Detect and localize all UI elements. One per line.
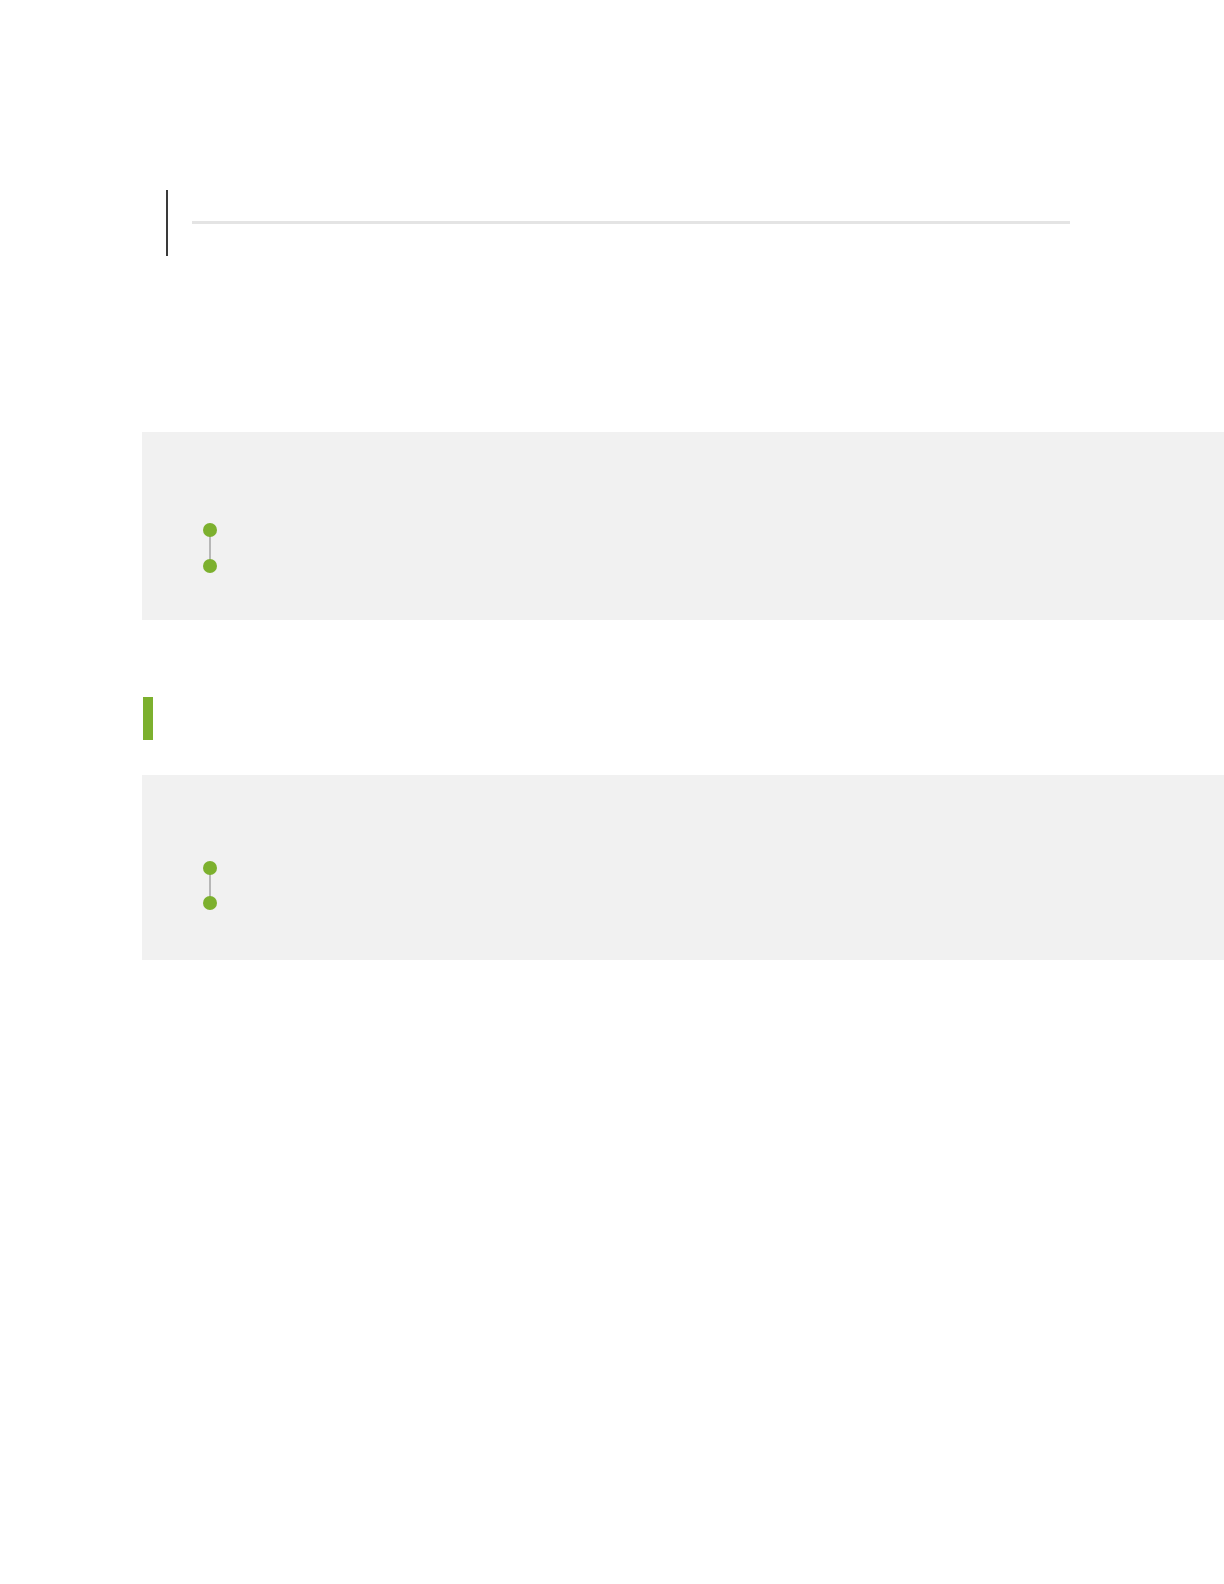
- button[interactable]: Route segment card 2: [142, 775, 1224, 960]
- button[interactable]: Route stops, segment 1: [203, 523, 217, 573]
- button[interactable]: Route segment card 1: [142, 432, 1224, 620]
- button[interactable]: Route stops, segment 2: [203, 861, 217, 910]
